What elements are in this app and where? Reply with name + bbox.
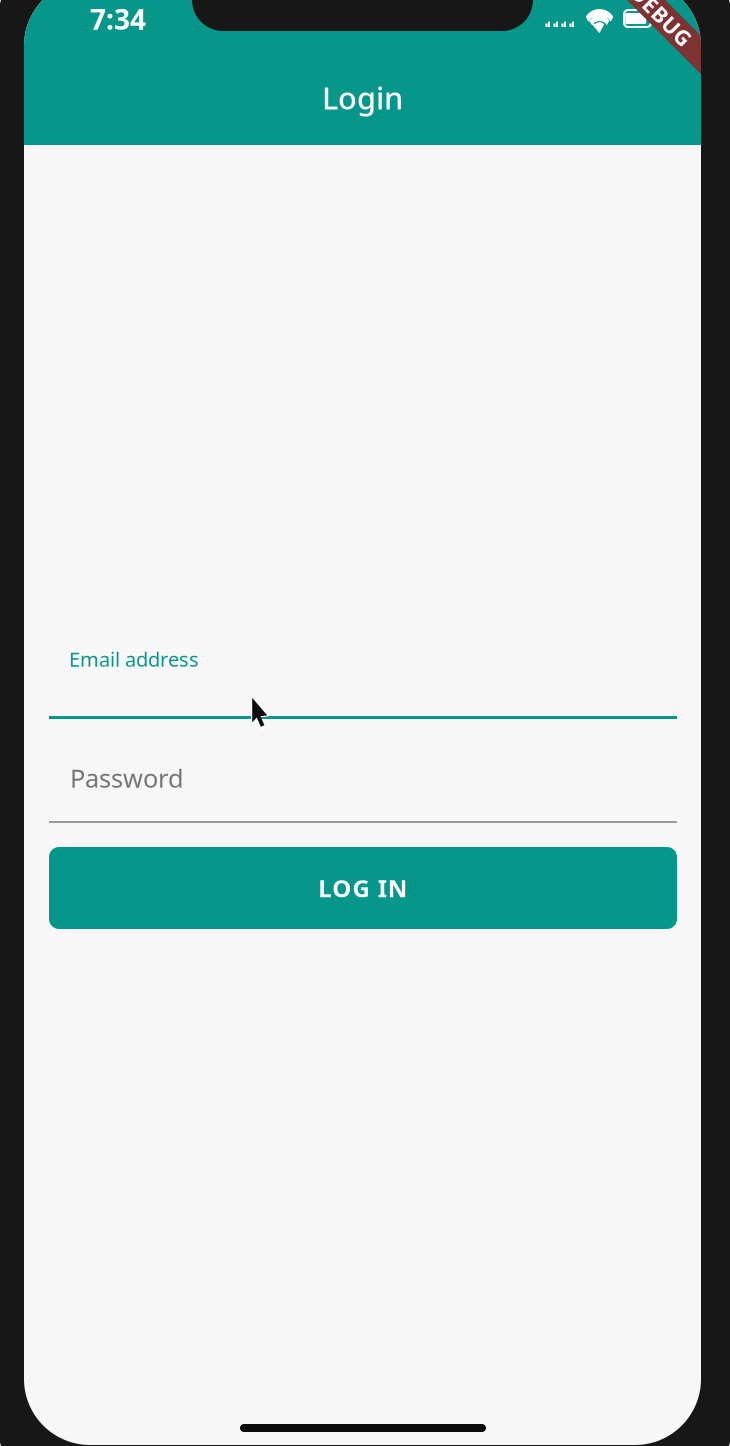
button[interactable]: LOG IN <box>49 847 677 929</box>
staticText: DEBUG <box>621 7 697 35</box>
staticText: 7:34 <box>90 0 146 38</box>
button[interactable]: Password <box>49 769 677 825</box>
button[interactable]: Email address <box>49 652 677 724</box>
staticText: Password <box>70 761 184 795</box>
staticText: Login <box>322 77 403 118</box>
staticText: Email address <box>69 646 199 672</box>
staticText: LOG IN <box>318 872 408 904</box>
